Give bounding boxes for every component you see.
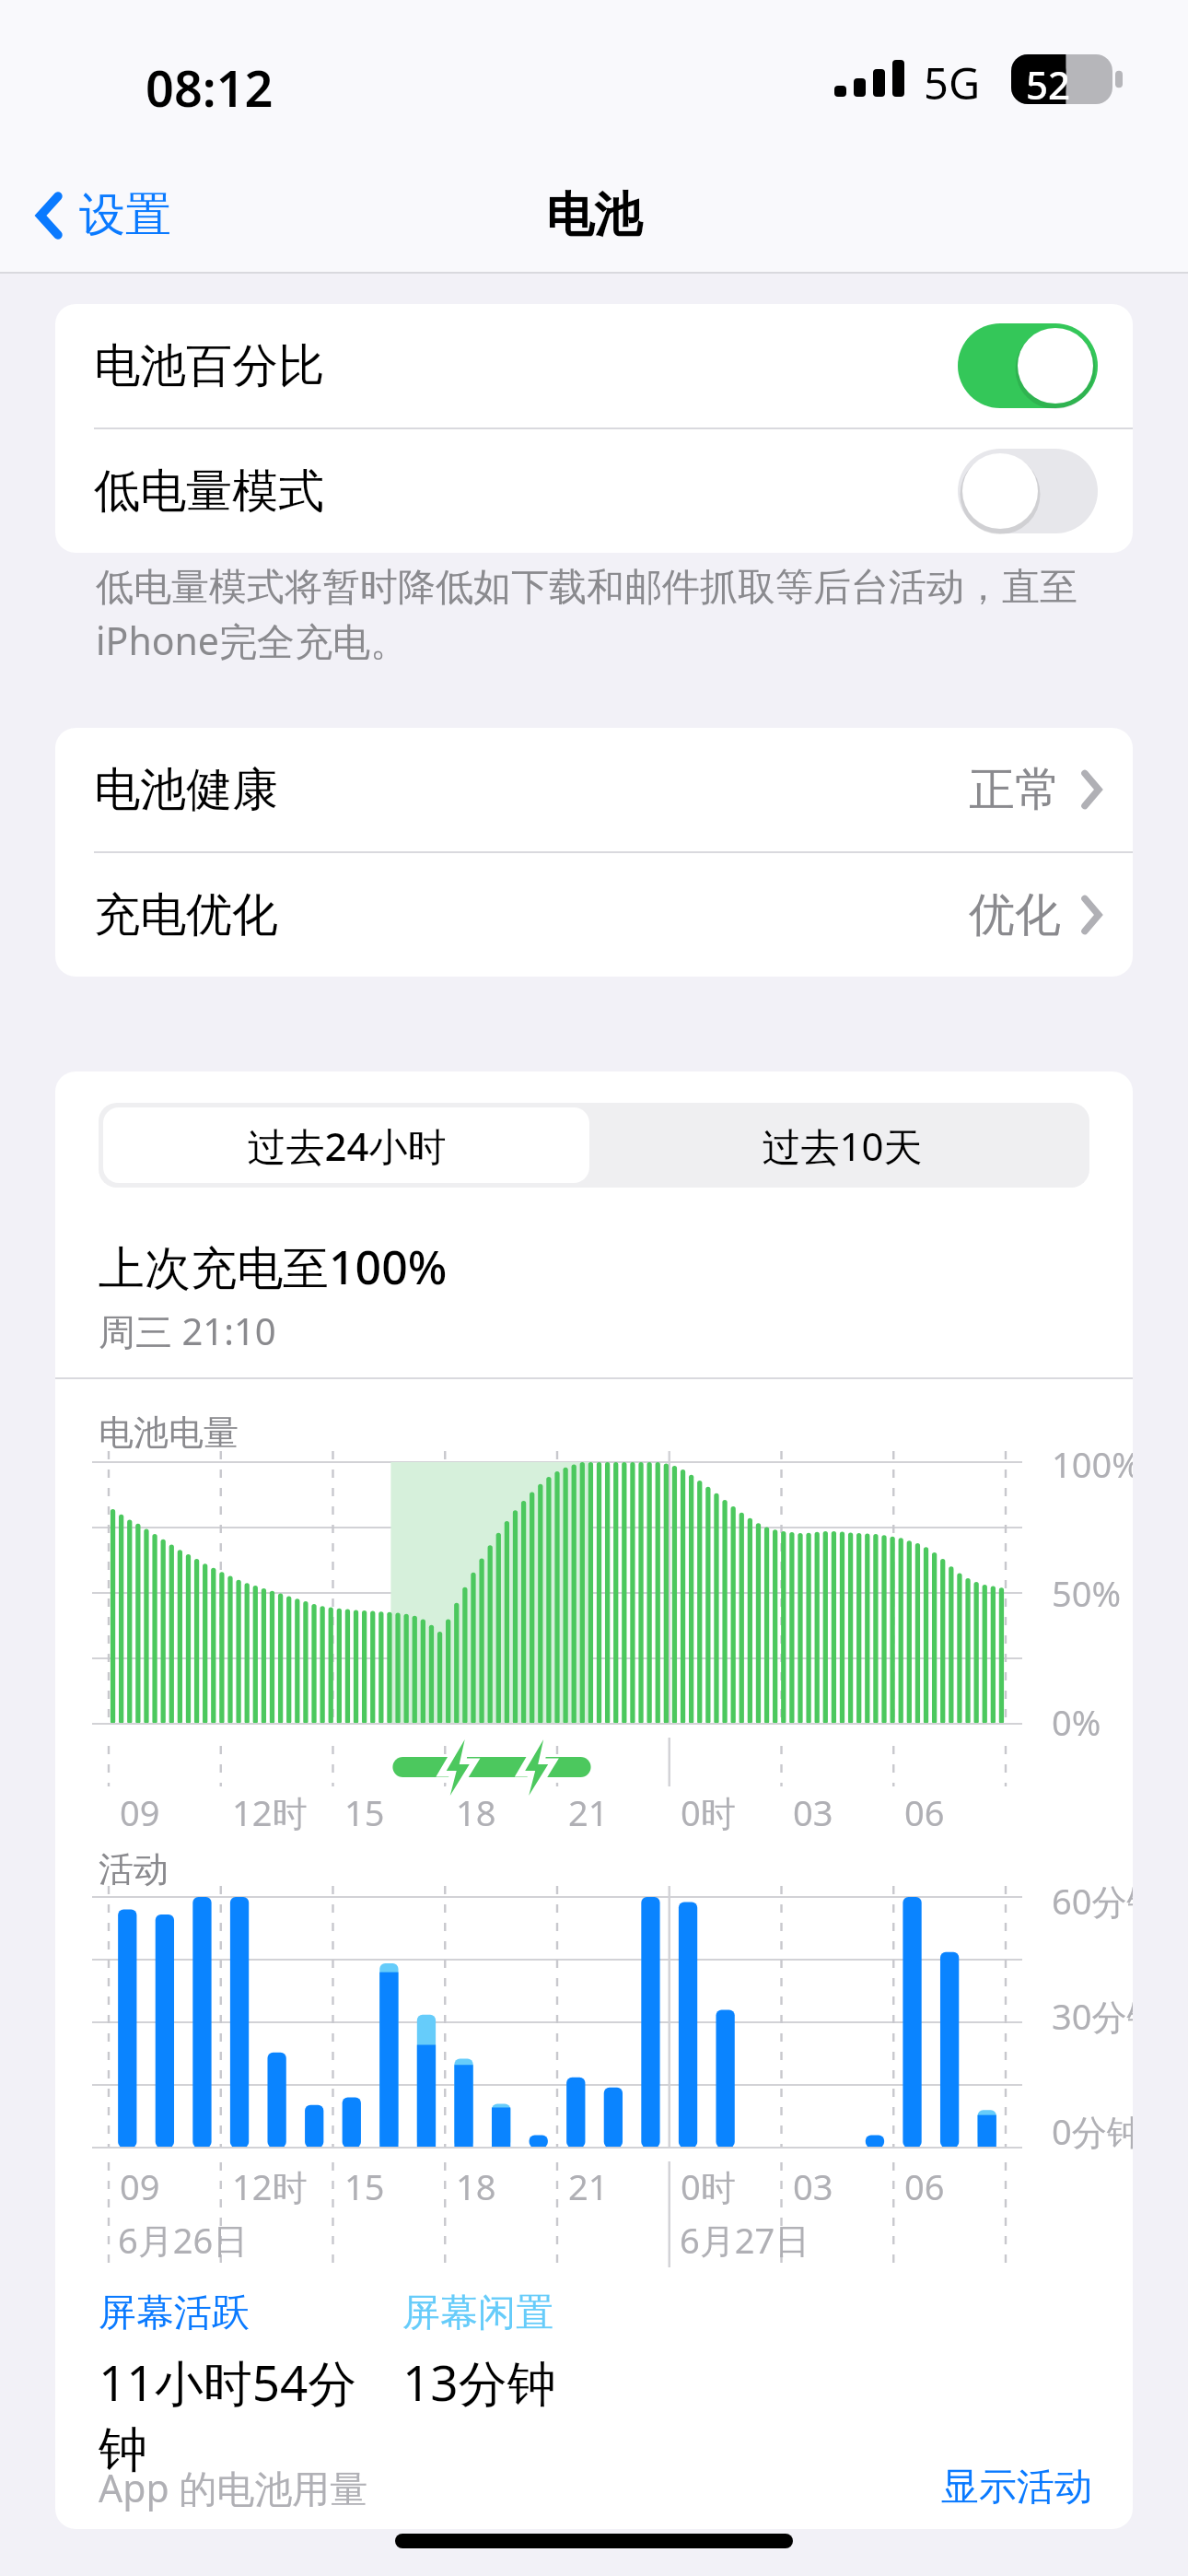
- button[interactable]: 过去10天: [594, 1103, 1089, 1188]
- staticText: 09: [120, 1788, 160, 1836]
- staticText: 09: [120, 2162, 160, 2210]
- staticText: 0时: [681, 2162, 736, 2210]
- staticText: 21: [568, 2162, 609, 2210]
- staticText: 03: [793, 1788, 833, 1836]
- staticText: 过去10天: [762, 1119, 923, 1172]
- staticText: 上次充电至100%: [99, 1235, 448, 1298]
- staticText: 0时: [681, 1788, 736, 1836]
- staticText: 优化: [969, 886, 1061, 944]
- staticText: 60分钟: [1052, 1877, 1133, 1925]
- button[interactable]: 电池健康: [55, 728, 1133, 851]
- staticText: 设置: [79, 186, 171, 244]
- staticText: 低电量模式将暂时降低如下载和邮件抓取等后台活动，直至 iPhone完全充电。: [96, 564, 1100, 666]
- staticText: 12时: [232, 2162, 308, 2210]
- staticText: 电池电量: [99, 1411, 239, 1455]
- staticText: 12时: [232, 1788, 308, 1836]
- staticText: 08:12: [146, 53, 274, 122]
- staticText: 电池百分比: [94, 337, 324, 395]
- staticText: 15: [344, 2162, 385, 2210]
- staticText: 显示活动: [941, 2464, 1092, 2512]
- staticText: 50%: [1052, 1569, 1122, 1617]
- staticText: 18: [456, 2162, 496, 2210]
- button[interactable]: 低电量模式: [55, 429, 1133, 553]
- staticText: 21: [568, 1788, 609, 1836]
- staticText: 15: [344, 1788, 385, 1836]
- staticText: 屏幕闲置: [402, 2289, 553, 2337]
- staticText: 充电优化: [94, 886, 278, 944]
- staticText: 周三 21:10: [99, 1306, 276, 1356]
- staticText: 5G: [924, 53, 981, 112]
- staticText: 电池: [546, 185, 642, 246]
- button[interactable]: 显示活动: [934, 2456, 1100, 2519]
- staticText: 0分钟: [1052, 2107, 1133, 2155]
- staticText: 30分钟: [1052, 1992, 1133, 2040]
- staticText: 52: [1026, 58, 1071, 111]
- staticText: 100%: [1052, 1440, 1133, 1488]
- button[interactable]: 过去24小时: [99, 1103, 594, 1188]
- staticText: 低电量模式: [94, 463, 324, 521]
- button[interactable]: 充电优化: [55, 853, 1133, 977]
- staticText: 0%: [1052, 1698, 1101, 1746]
- button[interactable]: 电池百分比: [55, 304, 1133, 427]
- staticText: 06: [904, 1788, 945, 1836]
- button[interactable]: 设置: [24, 175, 184, 255]
- staticText: 03: [793, 2162, 833, 2210]
- staticText: 活动: [99, 1847, 169, 1891]
- staticText: 6月27日: [680, 2216, 810, 2264]
- staticText: 11小时54分钟: [99, 2348, 402, 2481]
- staticText: 电池健康: [94, 761, 278, 819]
- staticText: 13分钟: [402, 2348, 556, 2415]
- staticText: 06: [904, 2162, 945, 2210]
- staticText: App 的电池用量: [99, 2462, 368, 2513]
- staticText: 6月26日: [118, 2216, 249, 2264]
- staticText: 正常: [969, 761, 1061, 819]
- staticText: 18: [456, 1788, 496, 1836]
- staticText: 屏幕活跃: [99, 2289, 250, 2337]
- staticText: 过去24小时: [247, 1119, 447, 1172]
